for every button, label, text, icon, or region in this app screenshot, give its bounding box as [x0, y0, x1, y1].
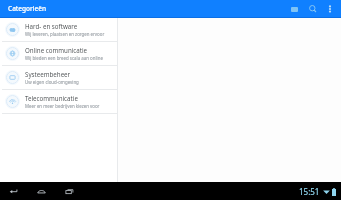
staticText: Systeembeheer: [25, 70, 71, 78]
staticText: 15:51: [299, 186, 320, 197]
button[interactable]: Telecommunicatie: [0, 90, 117, 113]
button[interactable]: Online communicatie: [0, 42, 117, 65]
button[interactable]: Meer opties: [323, 2, 337, 16]
button[interactable]: Zoeken: [305, 1, 321, 17]
staticText: Categorieën: [8, 4, 47, 13]
button[interactable]: Systeembeheer: [0, 66, 117, 89]
button[interactable]: Taal NL: [286, 1, 302, 17]
staticText: Wij bieden een breed scala aan online: [25, 55, 103, 61]
button[interactable]: Start: [34, 184, 48, 198]
staticText: Wij leveren, plaatsen en zorgen ervoor: [25, 31, 105, 37]
button[interactable]: Hard- en software: [0, 18, 117, 41]
button[interactable]: Terug: [6, 184, 20, 198]
button[interactable]: Recente apps: [62, 184, 76, 198]
staticText: Telecommunicatie: [25, 94, 78, 102]
staticText: Meer en meer bedrijven kiezen voor: [25, 103, 100, 109]
staticText: Online communicatie: [25, 46, 88, 54]
staticText: Uw eigen cloud-omgeving: [25, 79, 79, 85]
staticText: Hard- en software: [25, 22, 78, 30]
